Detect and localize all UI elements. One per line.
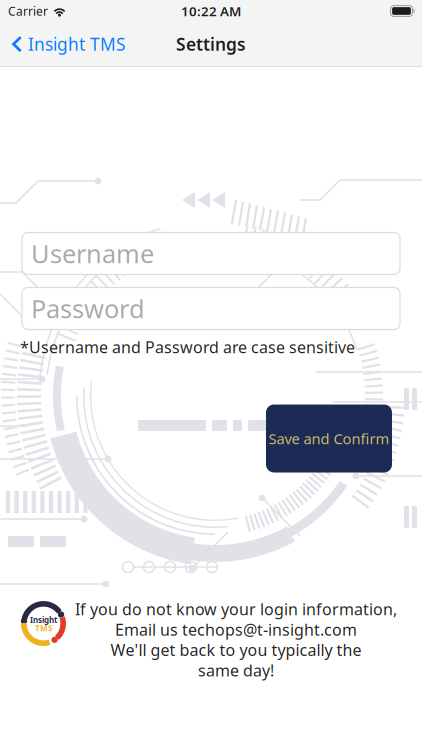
staticText: TMS (35, 623, 52, 633)
staticText: 10:22 AM (181, 2, 241, 20)
button[interactable]: Insight TMS (0, 25, 134, 62)
staticText: Username (31, 237, 154, 270)
staticText: same day! (198, 659, 274, 681)
staticText: If you do not know your login informatio… (75, 598, 397, 620)
staticText: We'll get back to you typically the (110, 639, 361, 660)
staticText: Password (31, 292, 145, 325)
button[interactable]: Save and Confirm (266, 404, 392, 472)
staticText: Save and Confirm (268, 429, 389, 448)
staticText: Insight TMS (28, 32, 126, 55)
staticText: Settings (176, 32, 246, 55)
staticText: Carrier (8, 3, 48, 19)
staticText: *Username and Password are case sensitiv… (20, 336, 355, 358)
staticText: Insight (30, 615, 57, 625)
staticText: Email us techops@t-insight.com (115, 619, 357, 640)
